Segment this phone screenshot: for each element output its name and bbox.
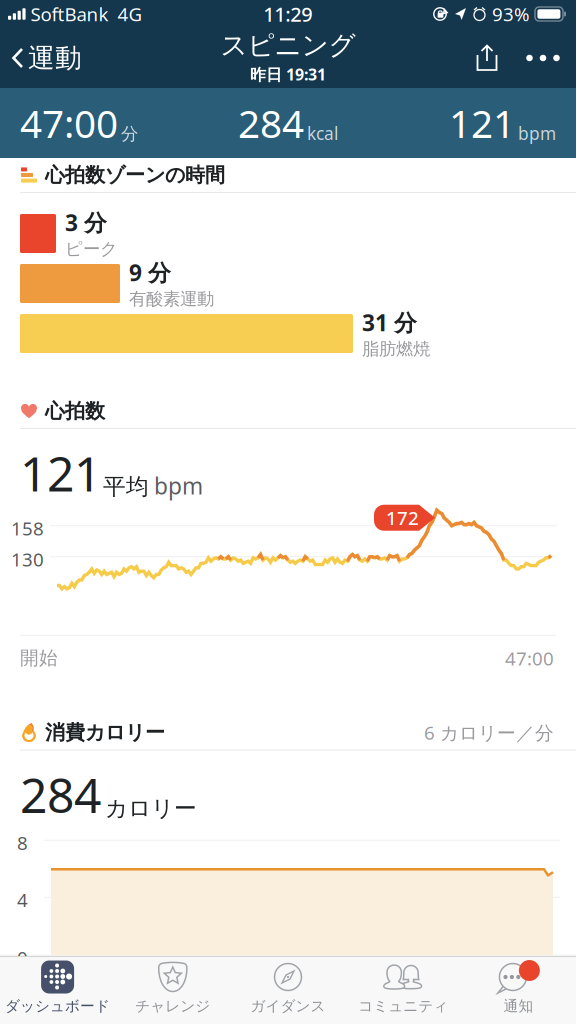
staticText: 47:00 bbox=[505, 646, 554, 670]
staticText: 172 bbox=[386, 505, 419, 530]
staticText: 11:29 bbox=[263, 1, 312, 27]
staticText: 121 bbox=[449, 97, 515, 149]
staticText: bpm bbox=[154, 471, 203, 501]
staticText: 9 分 bbox=[129, 257, 171, 287]
staticText: 平均 bbox=[103, 473, 149, 501]
staticText: 158 bbox=[11, 516, 44, 540]
staticText: kcal bbox=[307, 122, 338, 145]
staticText: 消費カロリー bbox=[45, 720, 165, 745]
staticText: 284 bbox=[238, 97, 304, 149]
staticText: 121 bbox=[20, 441, 101, 505]
staticText: 47:00 bbox=[20, 97, 118, 149]
staticText: 0 bbox=[17, 945, 28, 970]
staticText: 4 bbox=[17, 887, 28, 912]
staticText: スピニング bbox=[220, 29, 355, 62]
staticText: 3 分 bbox=[65, 207, 107, 237]
staticText: 脂肪燃焼 bbox=[362, 338, 430, 360]
staticText: 6 カロリー／分 bbox=[424, 720, 554, 745]
button[interactable]: 共有 bbox=[464, 28, 510, 88]
staticText: SoftBank bbox=[31, 2, 109, 26]
staticText: 心拍数ゾーンの時間 bbox=[45, 163, 225, 187]
staticText: 心拍数 bbox=[45, 399, 105, 423]
staticText: カロリー bbox=[105, 794, 197, 822]
staticText: ピーク bbox=[65, 238, 118, 260]
staticText: 130 bbox=[11, 547, 44, 571]
staticText: 93% bbox=[492, 2, 530, 26]
staticText: ガイダンス bbox=[250, 997, 325, 1015]
button[interactable]: 運動 bbox=[0, 28, 92, 88]
button[interactable]: その他 bbox=[510, 28, 576, 88]
staticText: 分 bbox=[121, 123, 138, 145]
staticText: 運動 bbox=[28, 42, 82, 74]
button[interactable]: 通知 bbox=[461, 957, 576, 1024]
staticText: コミュニティ bbox=[358, 997, 448, 1015]
button[interactable]: チャレンジ bbox=[115, 957, 230, 1024]
staticText: 開始 bbox=[20, 647, 58, 670]
staticText: 4G bbox=[118, 2, 143, 26]
staticText: 有酸素運動 bbox=[129, 288, 214, 310]
button[interactable]: ガイダンス bbox=[230, 957, 346, 1024]
staticText: チャレンジ bbox=[135, 997, 210, 1015]
staticText: 31 分 bbox=[362, 307, 417, 337]
staticText: ダッシュボード bbox=[5, 997, 110, 1015]
staticText: 昨日 19:31 bbox=[250, 64, 326, 85]
staticText: 通知 bbox=[503, 997, 533, 1015]
button[interactable]: ダッシュボード bbox=[0, 957, 115, 1024]
staticText: bpm bbox=[518, 122, 556, 145]
button[interactable]: コミュニティ bbox=[346, 957, 461, 1024]
staticText: 284 bbox=[20, 762, 101, 826]
staticText: 8 bbox=[17, 830, 28, 855]
